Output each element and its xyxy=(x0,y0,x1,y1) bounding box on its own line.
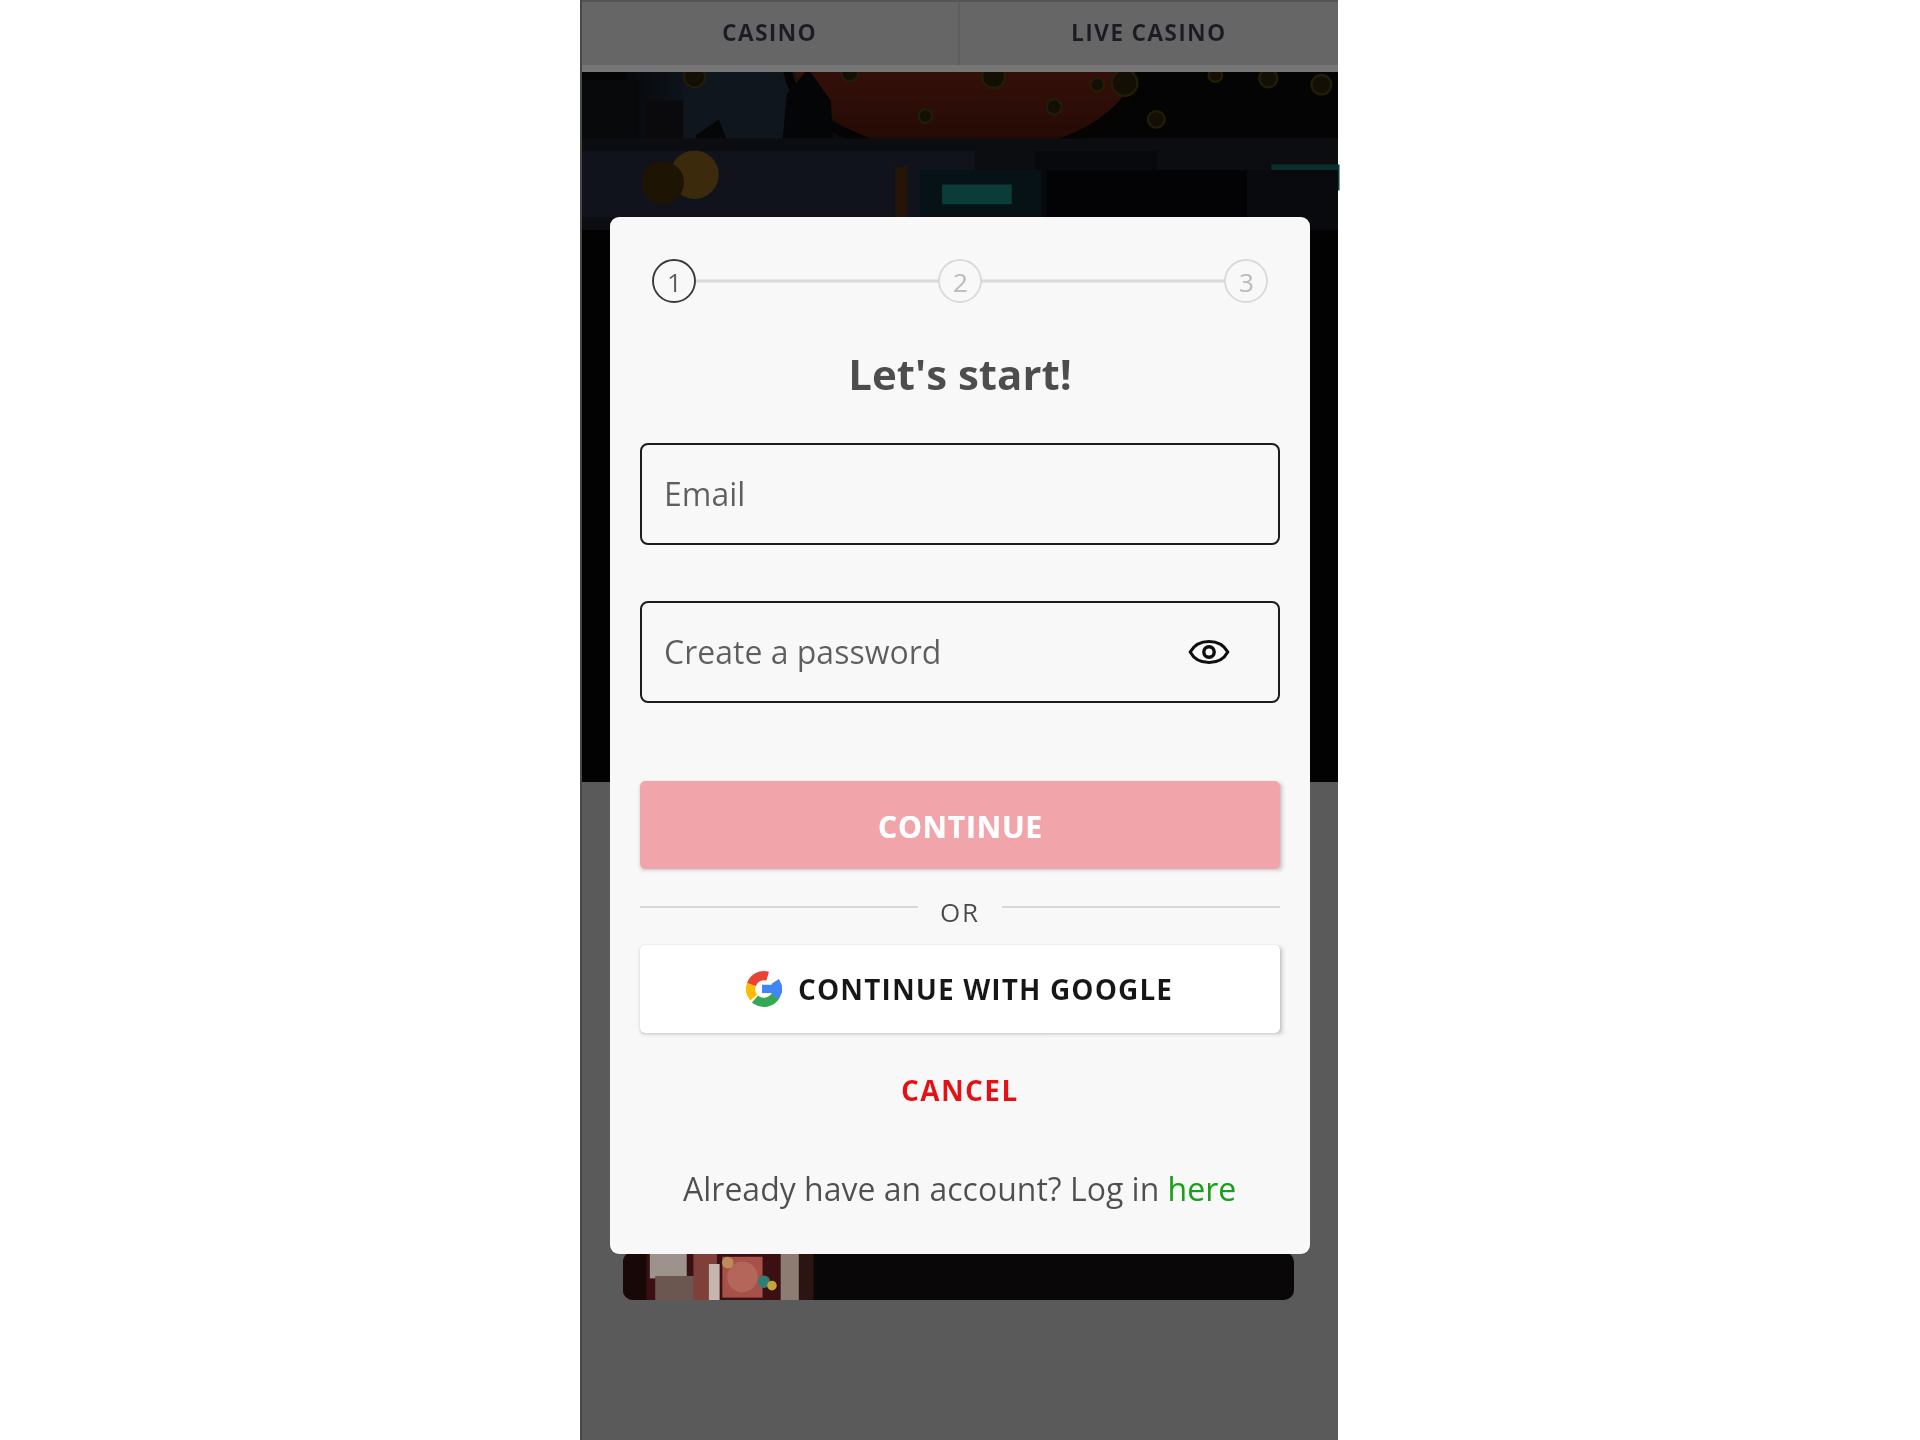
button[interactable]: Create a password xyxy=(640,601,1280,703)
staticText: CASINO xyxy=(722,16,818,47)
staticText: 1 xyxy=(667,264,682,299)
button[interactable]: CANCEL xyxy=(610,1060,1310,1120)
button[interactable]: CONTINUE WITH GOOGLE xyxy=(640,945,1280,1033)
button[interactable]: CONTINUE xyxy=(640,781,1280,869)
staticText: 2 xyxy=(953,264,968,299)
staticText: LIVE CASINO xyxy=(1071,16,1227,47)
button[interactable]: LIVE CASINO xyxy=(959,0,1338,62)
staticText: 3 xyxy=(1239,264,1254,299)
staticText: Let's start! xyxy=(610,345,1310,402)
button[interactable]: Show password xyxy=(1185,628,1233,676)
staticText: OR xyxy=(940,894,980,929)
button[interactable]: CASINO xyxy=(581,0,959,62)
staticText: Create a password xyxy=(664,630,942,674)
staticText: Already have an account? Log in here xyxy=(683,1167,1237,1211)
staticText: Email xyxy=(664,472,746,516)
staticText: CONTINUE xyxy=(878,806,1043,847)
staticText: CONTINUE WITH GOOGLE xyxy=(798,970,1174,1008)
button[interactable]: Email xyxy=(640,443,1280,545)
button[interactable]: Already have an account? Log in here xyxy=(610,1161,1310,1217)
staticText: CANCEL xyxy=(901,1071,1019,1109)
button[interactable]: Game xyxy=(623,1252,1294,1300)
